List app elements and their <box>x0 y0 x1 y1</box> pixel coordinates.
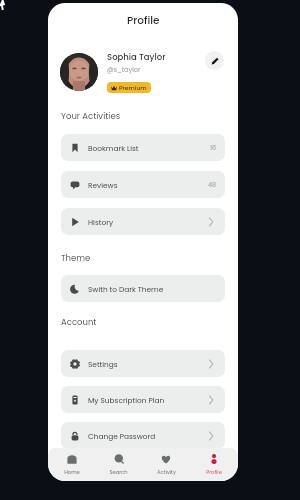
staticText: Premium <box>119 84 147 92</box>
staticText: Settings <box>88 359 118 369</box>
staticText: Activity <box>157 469 176 476</box>
button[interactable]: Activity <box>142 448 190 481</box>
button[interactable]: Edit profile <box>205 51 224 70</box>
button[interactable]: Swith to Dark Theme <box>61 275 225 302</box>
staticText: Home <box>64 469 80 476</box>
staticText: Reviews <box>88 180 118 190</box>
button[interactable]: Change Password <box>61 422 225 449</box>
staticText: @s_taylor <box>107 65 141 74</box>
staticText: Profile <box>206 469 222 476</box>
staticText: Profile <box>127 13 160 28</box>
staticText: 48 <box>208 180 217 189</box>
button[interactable]: Settings <box>61 350 225 377</box>
button[interactable]: Reviews <box>61 171 225 198</box>
staticText: My Subscription Plan <box>88 395 165 405</box>
button[interactable]: Profile <box>190 448 238 481</box>
button[interactable]: My Subscription Plan <box>61 386 225 413</box>
button[interactable]: Home <box>48 448 95 481</box>
button[interactable]: Bookmark List <box>61 134 225 161</box>
staticText: Bookmark List <box>88 143 139 153</box>
staticText: Swith to Dark Theme <box>88 284 164 294</box>
staticText: Account <box>61 316 97 328</box>
button[interactable]: Search <box>95 448 142 481</box>
button[interactable]: Premium <box>107 82 151 93</box>
button[interactable]: History <box>61 208 225 235</box>
staticText: Sophia Taylor <box>107 51 166 63</box>
staticText: Change Password <box>88 431 156 441</box>
staticText: Your Activities <box>61 110 121 122</box>
staticText: Theme <box>61 252 91 264</box>
staticText: Search <box>109 469 128 476</box>
staticText: 16 <box>210 143 217 152</box>
staticText: History <box>88 217 114 227</box>
